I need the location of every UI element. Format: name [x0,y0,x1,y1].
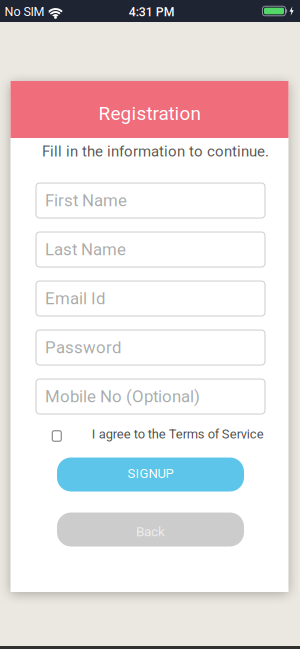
staticText: No SIM [4,4,44,19]
staticText: Back [136,523,165,539]
staticText: 4:31 PM [129,5,175,19]
staticText: Last Name [45,240,126,259]
staticText: Email Id [45,289,105,308]
button[interactable]: I agree to the Terms of Service [37,420,265,450]
button[interactable]: SIGNUP [57,457,244,491]
staticText: SIGNUP [127,466,173,481]
button[interactable]: Email Id [36,281,265,316]
staticText: First Name [45,191,127,210]
staticText: Fill in the information to continue. [42,143,269,160]
staticText: I agree to the Terms of Service [92,426,264,442]
button[interactable]: Back [57,512,244,546]
staticText: Password [45,338,121,357]
button[interactable]: Mobile No (Optional) [36,379,265,414]
button[interactable]: Password [36,330,265,365]
staticText: Mobile No (Optional) [45,387,200,406]
staticText: Registration [98,102,200,125]
button[interactable]: Last Name [36,232,265,267]
button[interactable]: First Name [36,183,265,218]
